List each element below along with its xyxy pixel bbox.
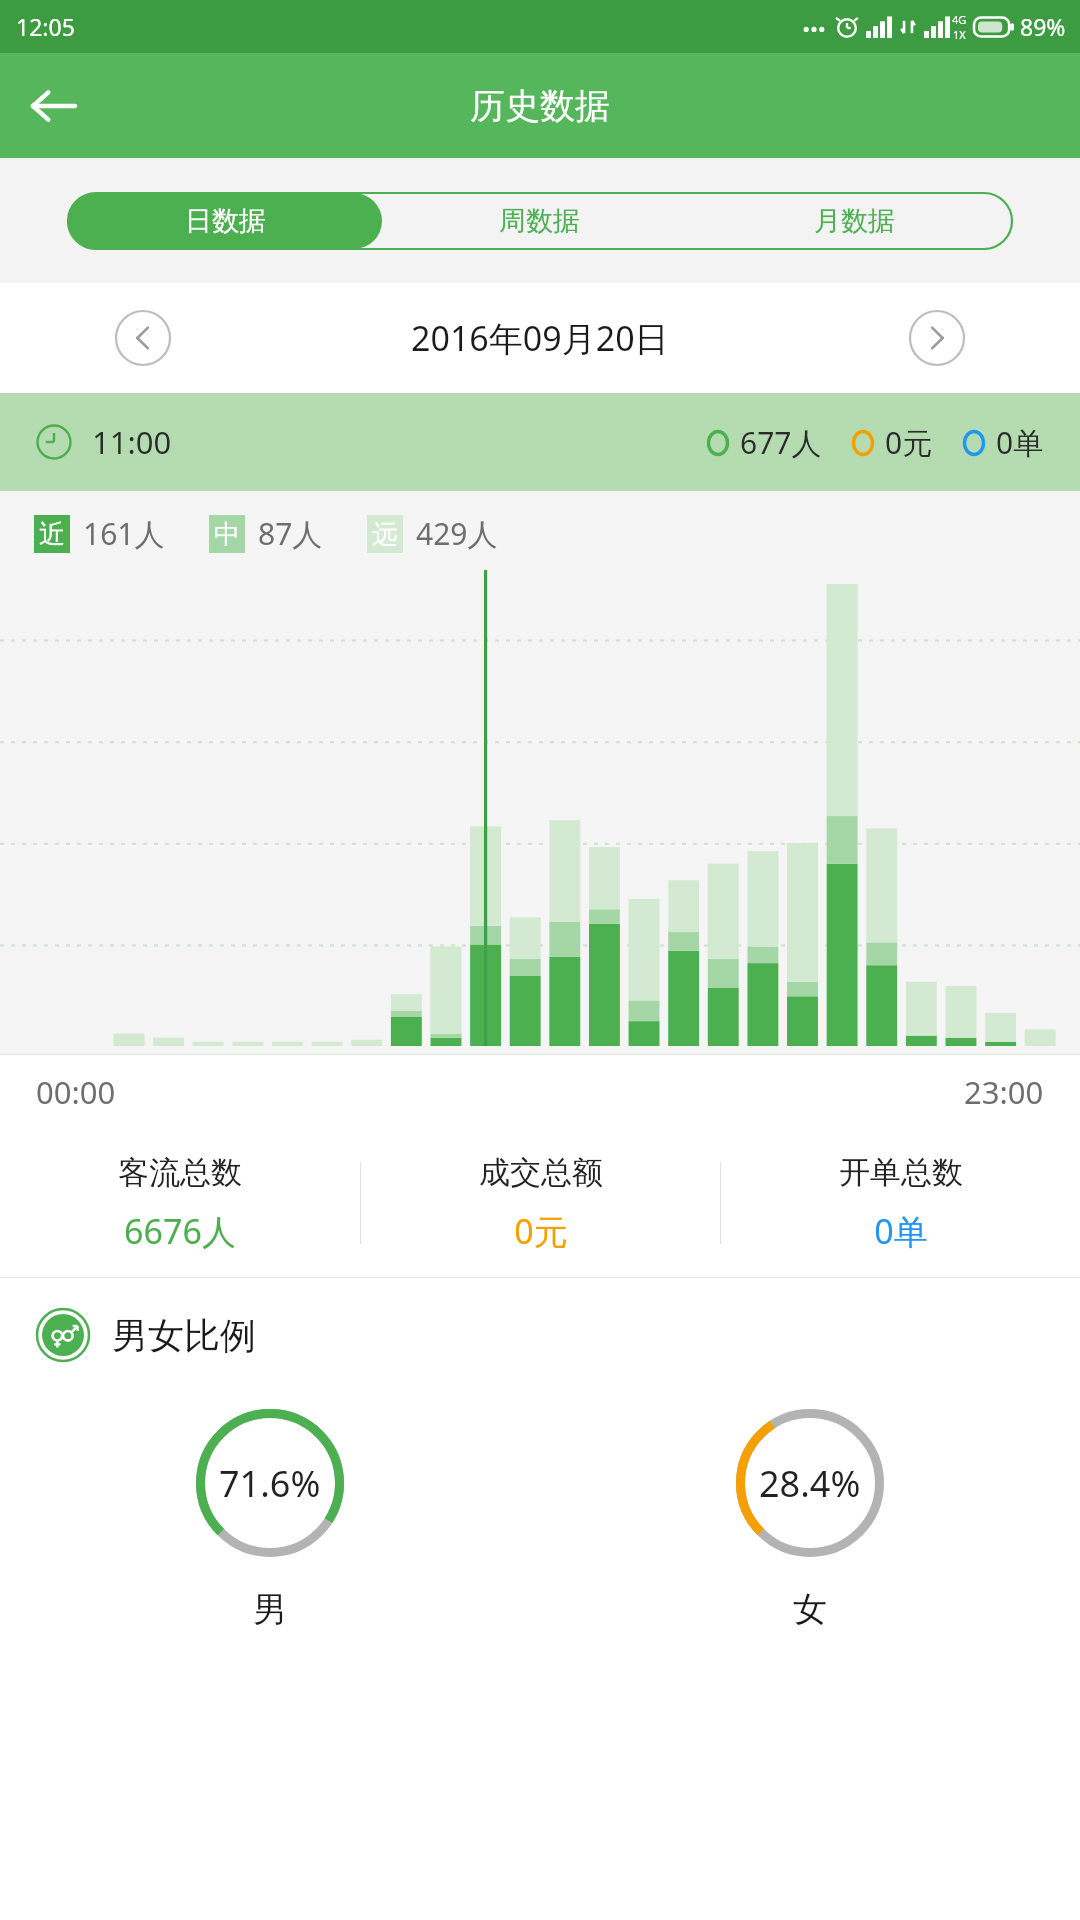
staticText: 4G: [952, 12, 967, 27]
button[interactable]: 71.6%: [0, 1408, 540, 1631]
staticText: 11:00: [92, 421, 172, 463]
button[interactable]: 月数据: [697, 193, 1012, 249]
staticText: 男: [253, 1588, 287, 1631]
staticText: 0单: [874, 1208, 928, 1254]
staticText: 71.6%: [219, 1459, 321, 1508]
staticText: 429人: [416, 513, 498, 554]
staticText: 0元: [885, 422, 933, 463]
staticText: 成交总额: [479, 1153, 603, 1192]
staticText: 2016年09月20日: [411, 315, 669, 361]
staticText: 男女比例: [112, 1313, 256, 1358]
staticText: 161人: [83, 513, 165, 554]
button[interactable]: 开单总数: [721, 1129, 1080, 1277]
button[interactable]: Previous day: [112, 307, 174, 369]
button[interactable]: 周数据: [382, 193, 697, 249]
staticText: 女: [793, 1588, 827, 1631]
staticText: 周数据: [499, 204, 580, 238]
staticText: 6676人: [124, 1208, 236, 1254]
staticText: 0元: [514, 1208, 568, 1254]
staticText: 23:00: [964, 1071, 1044, 1113]
button[interactable]: Back: [16, 70, 88, 142]
staticText: 历史数据: [470, 84, 610, 128]
staticText: 月数据: [814, 204, 895, 238]
button[interactable]: 日数据: [68, 193, 382, 249]
staticText: 00:00: [36, 1071, 116, 1113]
staticText: 28.4%: [759, 1459, 861, 1508]
button[interactable]: 成交总额: [361, 1129, 720, 1277]
staticText: 中: [214, 518, 240, 551]
button[interactable]: 28.4%: [540, 1408, 1080, 1631]
staticText: 1X: [953, 27, 966, 42]
staticText: 89%: [1020, 11, 1066, 42]
staticText: 近: [39, 518, 65, 551]
staticText: 开单总数: [839, 1153, 963, 1192]
button[interactable]: Next day: [906, 307, 968, 369]
button[interactable]: 客流总数: [0, 1129, 360, 1277]
staticText: 87人: [258, 513, 323, 554]
staticText: 客流总数: [118, 1153, 242, 1192]
staticText: 12:05: [16, 11, 75, 42]
staticText: 远: [372, 518, 398, 551]
staticText: 0单: [996, 422, 1044, 463]
staticText: 677人: [740, 422, 822, 463]
staticText: 日数据: [185, 204, 266, 238]
